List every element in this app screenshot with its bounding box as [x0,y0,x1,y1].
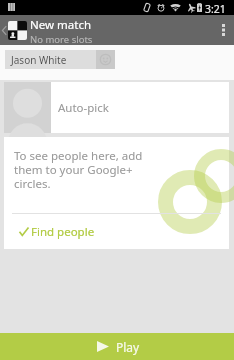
staticText: Jason White [11,53,96,67]
button[interactable]: Find people [4,214,229,249]
staticText: New match [30,17,92,33]
button[interactable]: Jason White [5,50,115,69]
staticText: To see people here, add them to your Goo… [14,148,143,191]
staticText: No more slots [30,33,93,46]
staticText: Play [116,339,140,355]
staticText: Auto-pick [58,100,109,116]
button[interactable]: More options [212,15,234,45]
button[interactable]: Play [0,333,234,360]
button[interactable]: Auto-pick [4,82,229,133]
staticText: 3:21 [205,2,226,16]
button[interactable]: Navigate up [0,15,27,45]
staticText: Find people [31,224,95,240]
